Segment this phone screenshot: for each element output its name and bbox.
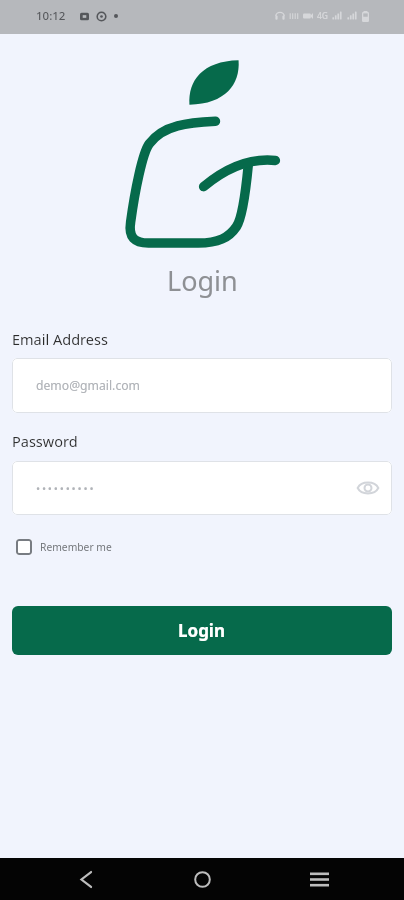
staticText: Login — [167, 262, 238, 299]
button[interactable]: Back — [58, 858, 114, 900]
staticText: 4G — [317, 10, 329, 22]
button[interactable]: demo@gmail.com — [12, 358, 392, 413]
staticText: demo@gmail.com — [36, 377, 140, 394]
staticText: Remember me — [40, 540, 112, 554]
staticText: Password — [12, 431, 78, 451]
button[interactable]: Login — [12, 606, 392, 655]
button[interactable]: Home — [174, 858, 230, 900]
staticText: •••••••••• — [36, 481, 96, 496]
staticText: 10:12 — [36, 8, 66, 24]
button[interactable]: Show password — [353, 473, 383, 503]
button[interactable]: Remember me — [14, 537, 114, 557]
button[interactable]: Recent apps — [291, 858, 347, 900]
button[interactable]: •••••••••• — [12, 461, 392, 515]
staticText: Email Address — [12, 329, 108, 349]
staticText: Login — [178, 619, 226, 642]
